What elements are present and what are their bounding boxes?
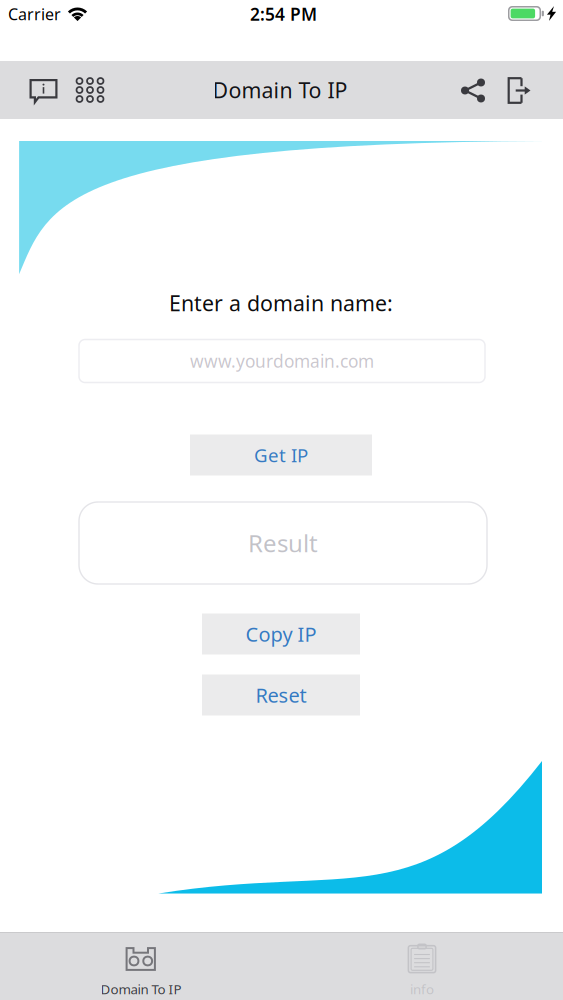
staticText: Enter a domain name: — [169, 289, 393, 317]
button[interactable]: Log out — [497, 65, 541, 115]
button[interactable]: Get IP — [190, 434, 372, 475]
staticText: Reset — [255, 682, 306, 708]
staticText: Carrier — [8, 3, 61, 25]
button[interactable]: Reset — [202, 674, 360, 715]
button[interactable]: info — [281, 933, 563, 1000]
button[interactable]: Keypad — [67, 65, 113, 115]
staticText: info — [410, 980, 434, 998]
staticText: www.yourdomain.com — [190, 349, 374, 372]
button[interactable]: Info — [20, 66, 66, 116]
staticText: Domain To IP — [212, 76, 347, 104]
staticText: Result — [248, 527, 318, 559]
staticText: 2:54 PM — [250, 2, 317, 25]
staticText: Get IP — [254, 443, 308, 467]
button[interactable]: Copy IP — [202, 613, 360, 654]
staticText: Copy IP — [245, 621, 316, 647]
button[interactable]: Share — [451, 65, 495, 115]
staticText: Domain To IP — [100, 980, 181, 998]
button[interactable]: Domain To IP — [0, 933, 281, 1000]
